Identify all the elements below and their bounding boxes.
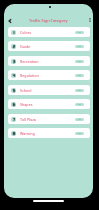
button[interactable]: Guide (8, 41, 90, 51)
staticText: Shapes (20, 102, 33, 107)
staticText: Traffic Sign Category (29, 18, 68, 23)
button[interactable] (75, 31, 84, 34)
button[interactable]: Back (5, 16, 14, 25)
button[interactable]: Regulation (8, 70, 90, 80)
staticText: Colors (20, 30, 32, 35)
button[interactable]: Warning (8, 128, 90, 138)
button[interactable]: Toll Plaza (8, 114, 90, 124)
button[interactable] (75, 103, 84, 106)
staticText: Toll Plaza (20, 117, 36, 122)
button[interactable] (75, 89, 84, 92)
button[interactable]: School (8, 85, 90, 95)
button[interactable]: Shapes (8, 99, 90, 109)
staticText: Recreation (20, 59, 39, 64)
button[interactable]: Recreation (8, 56, 90, 66)
staticText: Regulation (20, 73, 39, 78)
button[interactable] (75, 45, 84, 48)
button[interactable]: Colors (8, 27, 90, 37)
button[interactable]: More options (86, 16, 93, 24)
staticText: Guide (20, 44, 31, 49)
button[interactable] (75, 60, 84, 63)
staticText: Warning (20, 131, 35, 136)
staticText: School (20, 88, 32, 93)
button[interactable] (75, 132, 84, 135)
button[interactable] (75, 74, 84, 77)
button[interactable] (75, 118, 84, 121)
